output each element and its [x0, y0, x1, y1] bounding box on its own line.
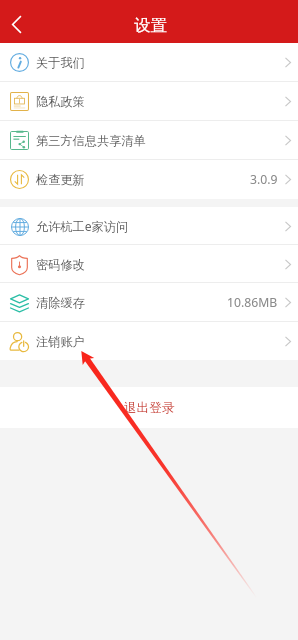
button[interactable]: 允许杭工e家访问	[0, 207, 298, 245]
staticText: 清除缓存	[36, 295, 85, 310]
staticText: 3.0.9	[250, 171, 278, 188]
button[interactable]: 第三方信息共享清单	[0, 121, 298, 160]
staticText: 10.86MB	[227, 294, 278, 311]
button[interactable]: 关于我们	[0, 43, 298, 82]
button[interactable]: Back	[1, 5, 32, 43]
button[interactable]: 隐私政策	[0, 82, 298, 121]
button[interactable]: 检查更新	[0, 160, 298, 199]
button[interactable]: 注销账户	[0, 322, 298, 360]
staticText: 关于我们	[36, 55, 85, 70]
button[interactable]: 清除缓存	[0, 283, 298, 322]
staticText: 注销账户	[36, 334, 85, 349]
staticText: 检查更新	[36, 172, 85, 187]
staticText: 允许杭工e家访问	[36, 218, 129, 235]
staticText: 密码修改	[36, 257, 85, 272]
button[interactable]: 密码修改	[0, 245, 298, 283]
button[interactable]: 退出登录	[0, 387, 298, 428]
staticText: 第三方信息共享清单	[36, 133, 146, 148]
staticText: 设置	[134, 15, 167, 36]
staticText: 退出登录	[124, 400, 175, 416]
staticText: 隐私政策	[36, 94, 85, 109]
